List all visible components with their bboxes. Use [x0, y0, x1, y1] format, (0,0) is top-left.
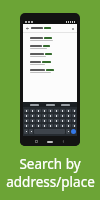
button[interactable]: Key [48, 114, 53, 117]
button[interactable]: Key [36, 109, 41, 112]
staticText: Search by [19, 155, 81, 173]
button[interactable]: Key [60, 114, 65, 117]
button[interactable]: Key [60, 119, 65, 122]
staticText: address/place [6, 173, 95, 191]
button[interactable]: Key [72, 119, 76, 122]
button[interactable]: Key [36, 119, 41, 122]
button[interactable]: Clear [70, 26, 75, 31]
button[interactable]: Emoji [29, 129, 33, 134]
button[interactable]: Key [72, 124, 76, 127]
button[interactable]: Key [48, 109, 53, 112]
button[interactable]: Back [25, 26, 30, 31]
button[interactable] [30, 51, 74, 59]
button[interactable]: Back [62, 140, 65, 143]
button[interactable]: Back [23, 24, 77, 32]
button[interactable]: Key [42, 124, 47, 127]
button[interactable]: Key [30, 119, 35, 122]
button[interactable]: Key [30, 124, 35, 127]
button[interactable]: Key [24, 119, 29, 122]
button[interactable]: Key [36, 124, 41, 127]
button[interactable]: Key [36, 114, 41, 117]
button[interactable]: Key [42, 109, 47, 112]
button[interactable]: Key [48, 124, 53, 127]
button[interactable] [46, 104, 55, 106]
button[interactable]: Search [71, 129, 76, 134]
button[interactable]: Key [30, 109, 35, 112]
button[interactable]: Key [48, 119, 53, 122]
button[interactable]: Key [66, 109, 71, 112]
button[interactable]: Key [66, 114, 71, 117]
button[interactable]: Key [30, 114, 35, 117]
button[interactable] [30, 59, 74, 67]
button[interactable]: Period [66, 129, 70, 134]
button[interactable] [30, 104, 39, 106]
button[interactable] [30, 67, 74, 75]
button[interactable]: Symbols [24, 129, 28, 134]
button[interactable]: Key [72, 114, 76, 117]
button[interactable] [30, 43, 74, 51]
button[interactable]: Key [24, 124, 29, 127]
button[interactable]: Key [72, 109, 76, 112]
button[interactable]: Recents [35, 140, 38, 143]
button[interactable]: Key [54, 109, 59, 112]
button[interactable]: Key [54, 124, 59, 127]
button[interactable]: Home [47, 141, 53, 143]
button[interactable]: Key [42, 114, 47, 117]
button[interactable]: Key [42, 119, 47, 122]
button[interactable]: Key [66, 124, 71, 127]
button[interactable]: Key [60, 109, 65, 112]
button[interactable]: Key [54, 119, 59, 122]
button[interactable]: Key [24, 114, 29, 117]
button[interactable]: Key [60, 124, 65, 127]
button[interactable]: Key [24, 109, 29, 112]
button[interactable] [61, 104, 70, 106]
button[interactable]: Key [66, 119, 71, 122]
button[interactable] [30, 35, 74, 43]
button[interactable]: Key [54, 114, 59, 117]
